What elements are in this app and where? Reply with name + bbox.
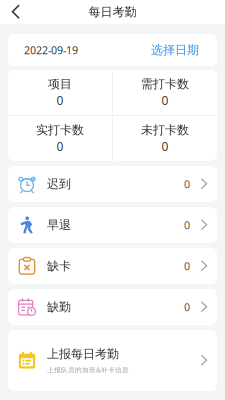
staticText: 上报队员的加班&补卡信息: [47, 365, 129, 374]
button[interactable]: 返回: [0, 0, 32, 24]
button[interactable]: 早退: [8, 207, 217, 243]
staticText: 0: [56, 138, 63, 154]
staticText: 迟到: [47, 177, 71, 191]
staticText: 需打卡数: [141, 77, 189, 91]
staticText: 项目: [48, 77, 72, 91]
staticText: 每日考勤: [88, 5, 136, 19]
button[interactable]: 上报每日考勤: [8, 330, 217, 391]
button[interactable]: 2022-09-19: [8, 34, 217, 66]
staticText: 0: [184, 259, 190, 273]
staticText: 2022-09-19: [24, 43, 78, 57]
staticText: 0: [184, 177, 190, 191]
staticText: 0: [184, 218, 190, 232]
staticText: 缺勤: [47, 300, 71, 314]
button[interactable]: 缺勤: [8, 289, 217, 325]
staticText: 0: [161, 138, 168, 154]
staticText: 上报每日考勤: [47, 347, 119, 361]
staticText: 早退: [47, 218, 71, 232]
staticText: 未打卡数: [141, 123, 189, 137]
button[interactable]: 缺卡: [8, 248, 217, 284]
staticText: 0: [56, 92, 63, 108]
staticText: 实打卡数: [36, 123, 84, 137]
staticText: 选择日期: [151, 43, 199, 57]
button[interactable]: 迟到: [8, 166, 217, 202]
staticText: 缺卡: [47, 259, 71, 273]
staticText: 0: [184, 300, 190, 314]
staticText: 0: [161, 92, 168, 108]
